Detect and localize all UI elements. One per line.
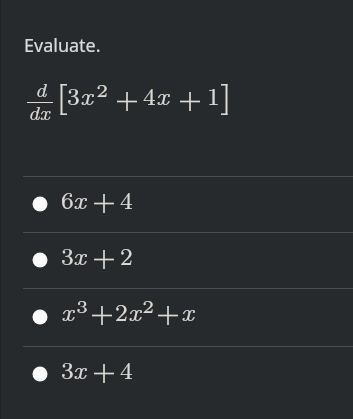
staticText: 6 bbox=[61, 182, 74, 216]
staticText: 3 bbox=[67, 78, 80, 112]
staticText: x bbox=[80, 78, 94, 112]
staticText: d bbox=[35, 76, 47, 103]
staticText: 2 bbox=[96, 77, 109, 103]
button[interactable]: x bbox=[0, 288, 353, 346]
staticText: 4 bbox=[120, 352, 133, 386]
staticText: x bbox=[128, 294, 142, 328]
staticText: Evaluate. bbox=[24, 33, 101, 58]
staticText: 4 bbox=[143, 78, 156, 112]
staticText: 2 bbox=[115, 294, 128, 328]
staticText: x bbox=[181, 294, 195, 328]
staticText: 2 bbox=[120, 238, 133, 272]
staticText: 3 bbox=[61, 352, 74, 386]
staticText: x bbox=[61, 294, 75, 328]
staticText: x bbox=[73, 182, 87, 216]
button[interactable]: 3 bbox=[0, 346, 353, 402]
button[interactable]: 6 bbox=[0, 176, 353, 232]
staticText: 2 bbox=[142, 293, 155, 319]
staticText: x bbox=[73, 352, 87, 386]
staticText: 3 bbox=[76, 293, 89, 319]
staticText: 4 bbox=[120, 182, 133, 216]
staticText: dx bbox=[28, 99, 50, 126]
staticText: 3 bbox=[61, 238, 74, 272]
staticText: 1 bbox=[207, 78, 220, 112]
button[interactable]: 3 bbox=[0, 232, 353, 288]
staticText: x bbox=[156, 78, 170, 112]
staticText: x bbox=[73, 238, 87, 272]
